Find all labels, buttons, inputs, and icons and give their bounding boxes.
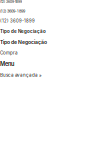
staticText: Tipo de Negociação	[0, 29, 46, 34]
staticText: Menu	[0, 61, 14, 67]
staticText: (12) 3609-1899	[0, 9, 25, 13]
staticText: Busca avançada »	[0, 72, 42, 78]
staticText: (12) 3609-1899	[0, 18, 35, 24]
staticText: Compra	[0, 50, 18, 56]
staticText: (12) 3609-1899	[0, 0, 22, 4]
staticText: Tipo de Negociação	[0, 39, 47, 45]
